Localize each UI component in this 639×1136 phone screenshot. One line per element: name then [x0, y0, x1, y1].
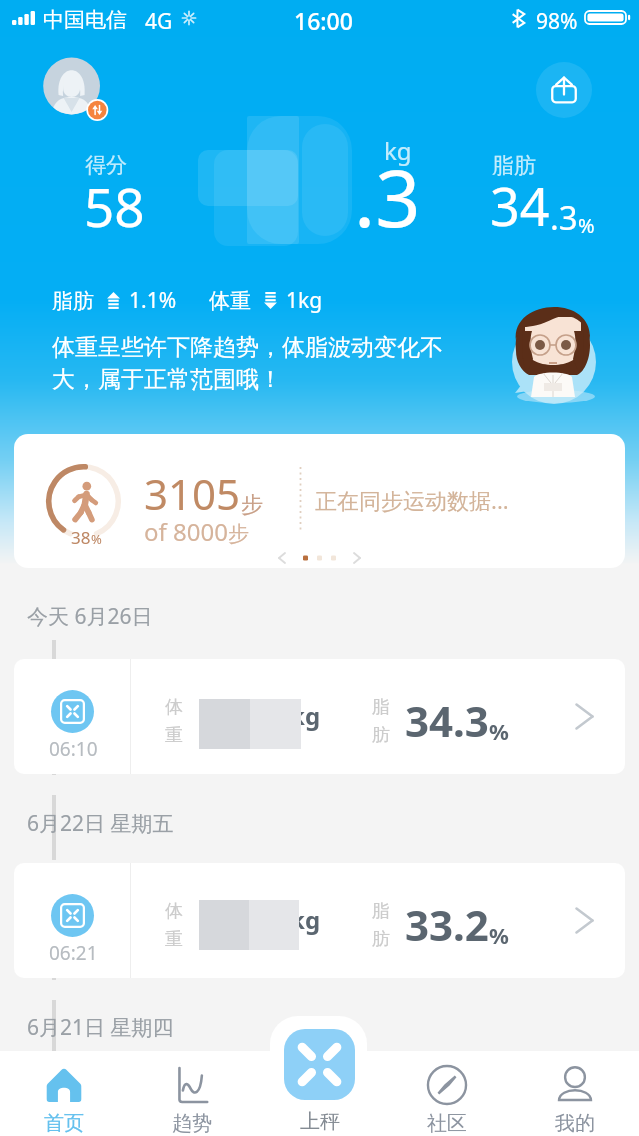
staticText: 34 [490, 170, 550, 241]
staticText: 正在同步运动数据... [315, 485, 509, 515]
staticText: 06:10 [49, 736, 98, 762]
staticText: 1kg [286, 286, 323, 315]
staticText: % [489, 920, 509, 950]
staticText: 步 [241, 491, 263, 519]
staticText: of 8000 [144, 515, 228, 548]
button[interactable]: 06:21 [14, 863, 625, 978]
staticText: % [578, 212, 595, 239]
staticText: 6月21日 星期四 [27, 1013, 174, 1042]
staticText: kg [384, 134, 412, 167]
staticText: 重 [165, 724, 183, 747]
staticText: 社区 [427, 1111, 467, 1136]
button[interactable]: 上秤 [284, 1029, 355, 1100]
staticText: 脂肪 [492, 152, 536, 180]
button[interactable]: 上秤 [256, 1109, 384, 1134]
staticText: 58 [84, 170, 145, 242]
staticText: kg [290, 903, 321, 936]
staticText: 34.3 [405, 692, 489, 749]
staticText: 步 [228, 521, 249, 547]
staticText: 趋势 [172, 1111, 212, 1136]
staticText: % [489, 716, 509, 746]
staticText: 体重 [209, 288, 251, 314]
staticText: 今天 6月26日 [27, 602, 153, 631]
button[interactable]: Profile [36, 56, 112, 124]
staticText: 1.1% [129, 286, 177, 315]
staticText: .3 [550, 195, 578, 240]
staticText: 4G [145, 7, 173, 36]
staticText: % [91, 530, 102, 548]
staticText: 06:21 [49, 940, 98, 966]
staticText: 脂肪 [52, 288, 94, 314]
staticText: .3 [354, 143, 421, 251]
staticText: 98% [536, 7, 578, 36]
staticText: 得分 [85, 152, 127, 178]
staticText: 3105 [144, 465, 241, 522]
button[interactable]: Share [536, 62, 592, 118]
staticText: 体重呈些许下降趋势，体脂波动变化不大，属于正常范围哦！ [52, 333, 464, 394]
staticText: 首页 [44, 1111, 84, 1136]
button[interactable]: 趋势 [128, 1051, 256, 1136]
staticText: 体 [165, 900, 183, 923]
button[interactable]: 我的 [511, 1051, 639, 1136]
staticText: 38 [71, 526, 91, 549]
button[interactable]: 06:10 [14, 659, 625, 774]
staticText: 脂 [372, 900, 390, 923]
button[interactable]: 38 [14, 434, 625, 568]
staticText: 脂 [372, 696, 390, 719]
staticText: 中国电信 [43, 7, 127, 33]
staticText: 肪 [372, 724, 390, 747]
staticText: 上秤 [300, 1109, 340, 1134]
button[interactable]: 社区 [383, 1051, 511, 1136]
staticText: 33.2 [405, 896, 489, 953]
staticText: 我的 [555, 1111, 595, 1136]
staticText: 体 [165, 696, 183, 719]
staticText: 重 [165, 928, 183, 951]
staticText: 16:00 [294, 5, 353, 36]
staticText: kg [290, 699, 321, 732]
staticText: 肪 [372, 928, 390, 951]
staticText: 6月22日 星期五 [27, 809, 174, 838]
button[interactable]: 首页 [0, 1051, 128, 1136]
